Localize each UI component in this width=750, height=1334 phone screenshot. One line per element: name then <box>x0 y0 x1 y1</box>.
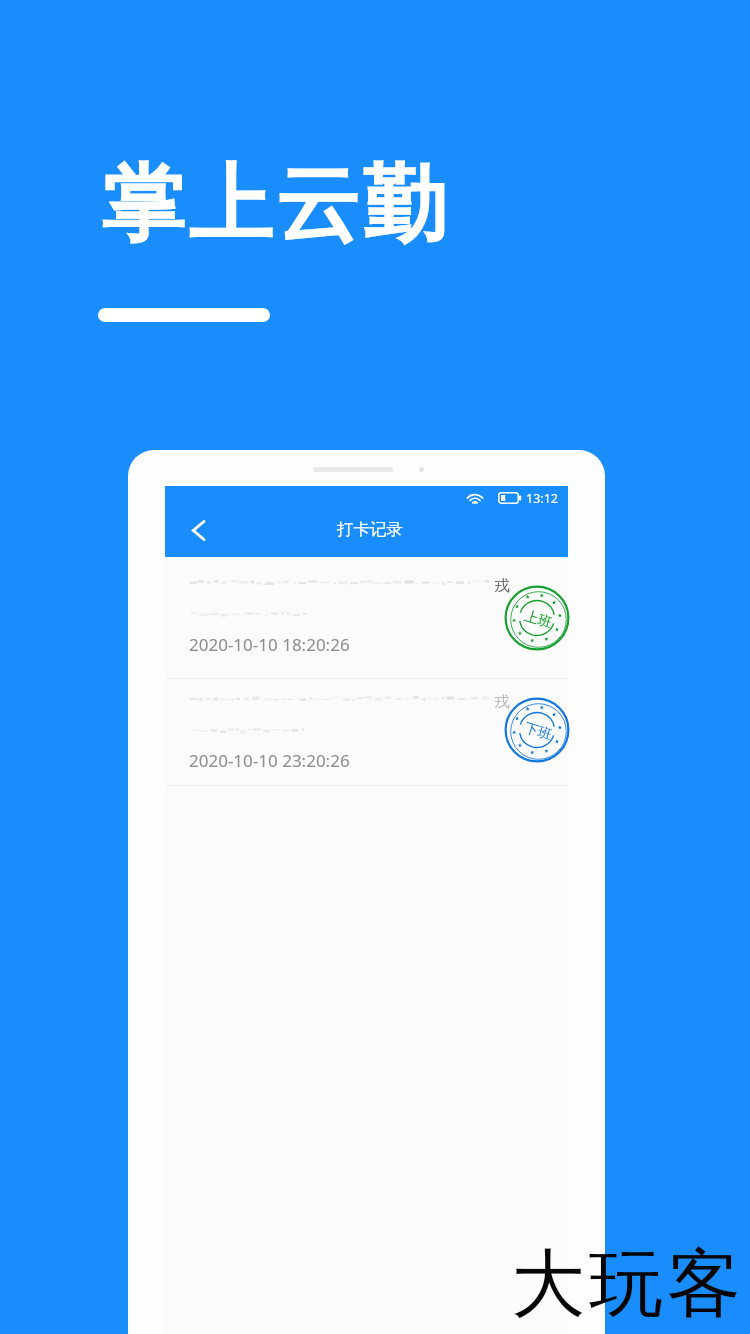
staticText: 下班 <box>522 719 554 745</box>
staticText: 打卡记录 <box>337 519 403 540</box>
staticText: 13:12 <box>526 490 558 507</box>
button[interactable]: 2020-10-10 23:20:26 <box>165 679 568 786</box>
staticText: 大玩客 <box>509 1238 743 1331</box>
staticText: 2020-10-10 18:20:26 <box>189 633 350 656</box>
staticText: 2020-10-10 23:20:26 <box>189 749 350 772</box>
button[interactable]: 2020-10-10 18:20:26 <box>165 557 568 679</box>
staticText: 上班 <box>522 607 554 633</box>
staticText: 戎 <box>494 576 510 596</box>
staticText: 掌上云勤 <box>101 152 450 258</box>
button[interactable]: 返回 <box>179 511 217 549</box>
staticText: 戎 <box>494 692 510 712</box>
